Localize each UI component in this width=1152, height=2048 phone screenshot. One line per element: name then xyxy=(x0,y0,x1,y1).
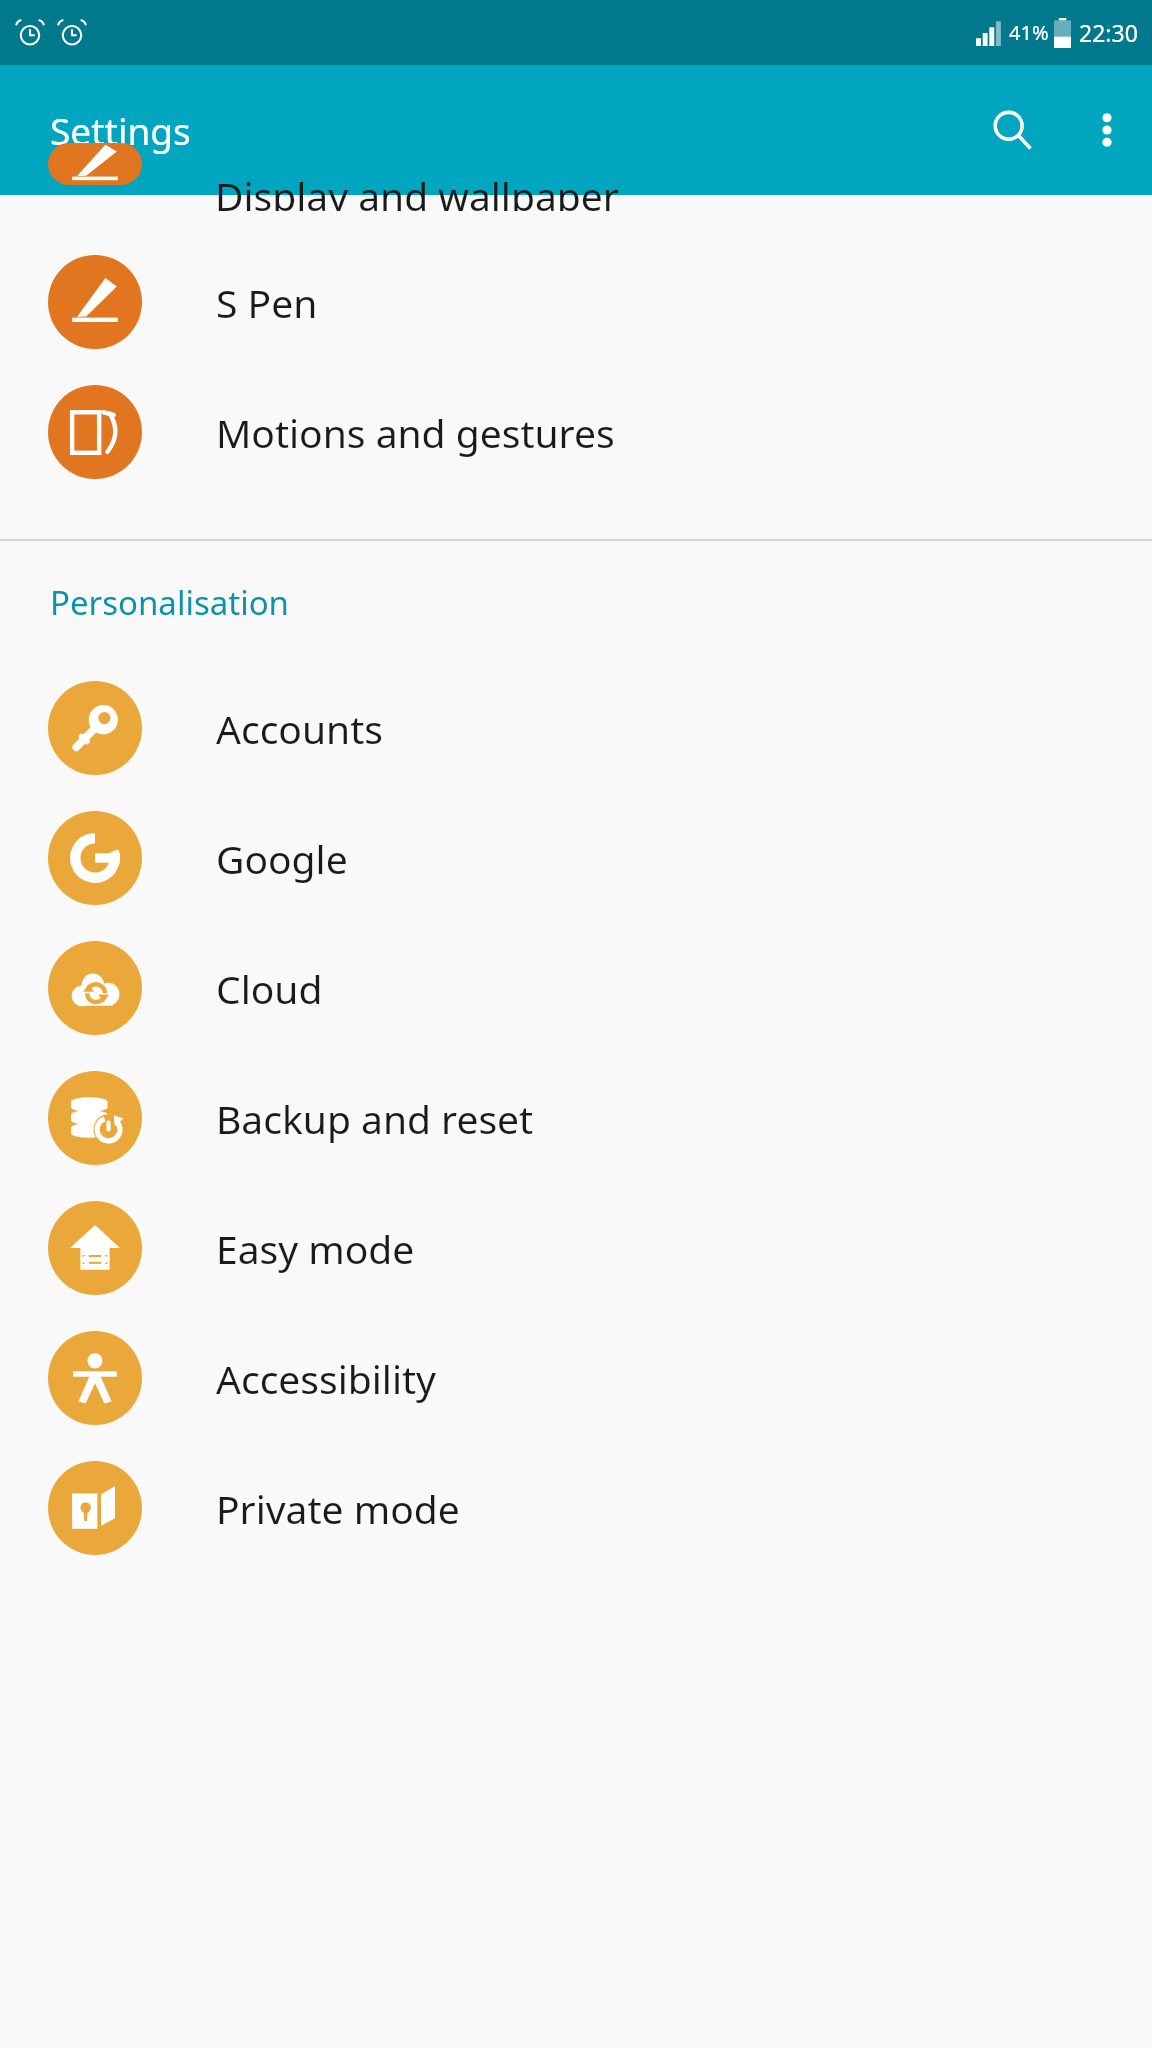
button[interactable]: Backup and reset xyxy=(0,1053,1152,1183)
button[interactable]: Cloud xyxy=(0,923,1152,1053)
staticText: Accounts xyxy=(216,702,383,755)
staticText: Cloud xyxy=(216,962,323,1015)
button[interactable]: Search xyxy=(962,80,1062,180)
staticText: Backup and reset xyxy=(216,1092,534,1145)
button[interactable]: More options xyxy=(1062,85,1152,175)
button[interactable]: S Pen xyxy=(0,237,1152,367)
button[interactable]: Accessibility xyxy=(0,1313,1152,1443)
staticText: Google xyxy=(216,832,348,885)
staticText: Display and wallpaper xyxy=(215,169,619,211)
button[interactable]: Private mode xyxy=(0,1443,1152,1573)
staticText: Personalisation xyxy=(50,580,290,625)
button[interactable]: Accounts xyxy=(0,663,1152,793)
staticText: Private mode xyxy=(216,1482,460,1535)
staticText: 41% xyxy=(1009,19,1049,46)
staticText: Motions and gestures xyxy=(216,406,615,459)
staticText: Settings xyxy=(50,105,191,155)
staticText: 22:30 xyxy=(1079,17,1138,48)
button[interactable]: Motions and gestures xyxy=(0,367,1152,497)
button[interactable]: Google xyxy=(0,793,1152,923)
staticText: Accessibility xyxy=(216,1352,436,1405)
staticText: S Pen xyxy=(216,276,318,329)
staticText: Easy mode xyxy=(216,1222,415,1275)
button[interactable]: Easy mode xyxy=(0,1183,1152,1313)
button[interactable]: Display and wallpaper xyxy=(0,195,1152,237)
